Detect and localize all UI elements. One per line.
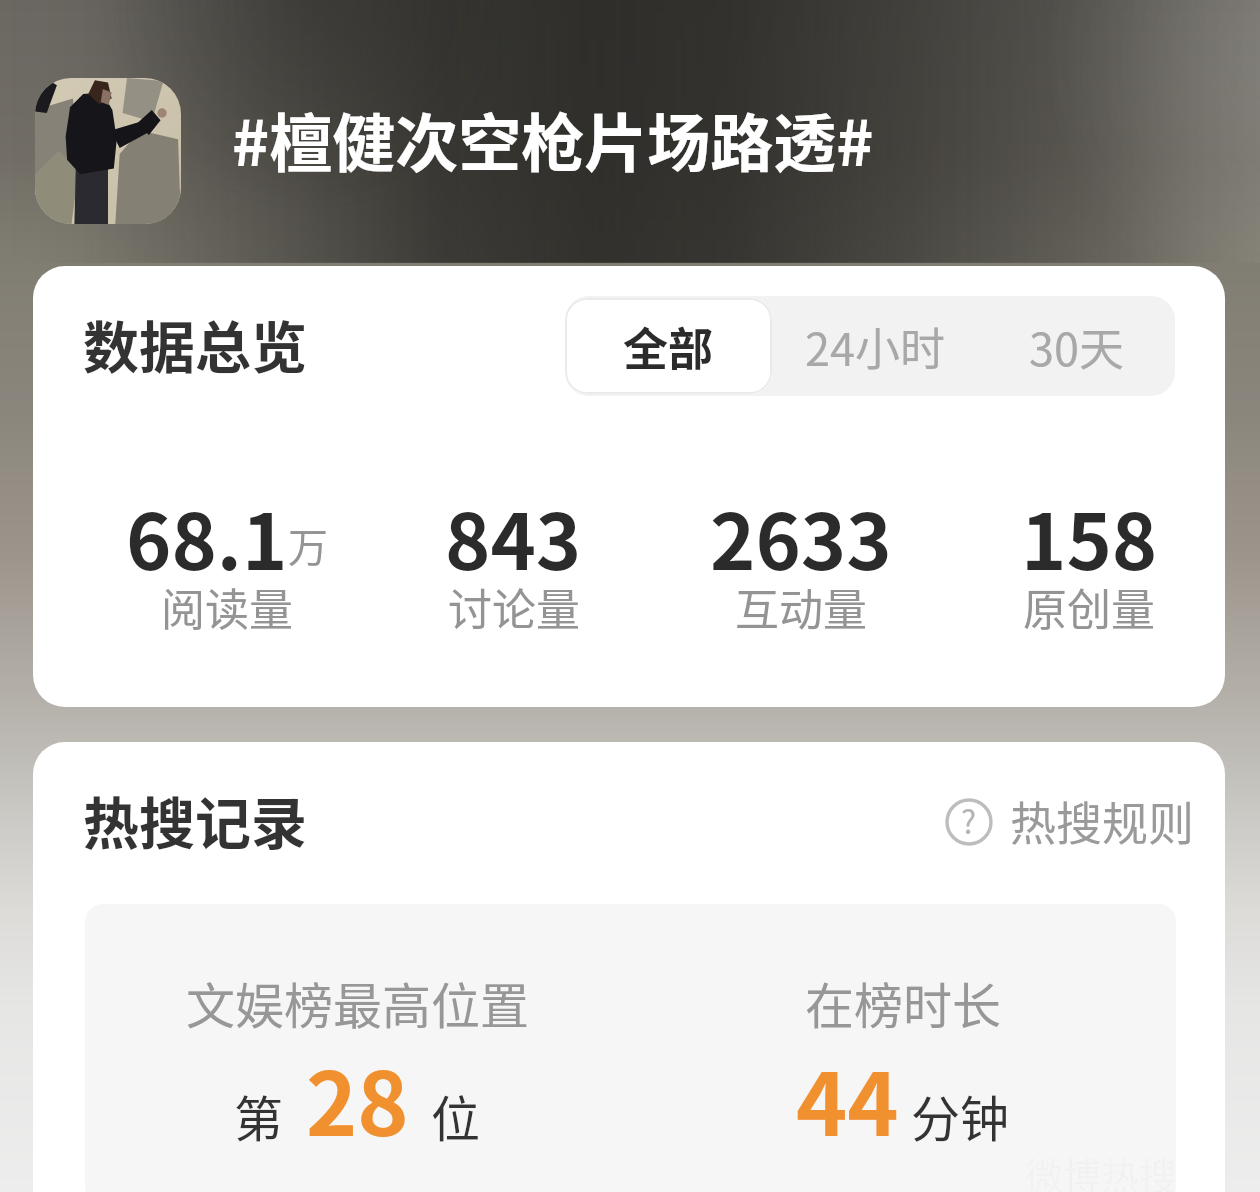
- staticText: 第: [234, 1080, 284, 1151]
- staticText: 位: [431, 1080, 481, 1151]
- staticText: 热搜规则: [1010, 787, 1194, 854]
- staticText: 全部: [623, 314, 714, 379]
- staticText: 文娱榜最高位置: [186, 967, 530, 1038]
- staticText: 原创量: [1023, 575, 1155, 639]
- staticText: 158: [1021, 481, 1158, 592]
- button[interactable]: 30天: [977, 296, 1175, 396]
- button[interactable]: 全部: [565, 298, 772, 394]
- staticText: 热搜记录: [83, 779, 307, 860]
- staticText: ?: [961, 797, 977, 843]
- staticText: 互动量: [735, 575, 867, 639]
- staticText: 2633: [710, 481, 892, 592]
- staticText: 阅读量: [161, 575, 293, 639]
- staticText: 万: [288, 516, 328, 574]
- button[interactable]: Topic cover photo: [35, 78, 181, 224]
- button[interactable]: ?: [945, 788, 1194, 855]
- staticText: #檀健次空枪片场路透#: [232, 93, 874, 184]
- staticText: 讨论量: [448, 575, 580, 639]
- button[interactable]: 24小时: [772, 296, 977, 396]
- staticText: 数据总览: [83, 303, 307, 384]
- staticText: 分钟: [911, 1080, 1010, 1151]
- staticText: 24小时: [805, 314, 945, 379]
- staticText: 843: [445, 481, 582, 592]
- staticText: 44: [796, 1035, 899, 1161]
- staticText: 28: [306, 1035, 409, 1161]
- staticText: 在榜时长: [805, 967, 1002, 1038]
- staticText: 30天: [1029, 314, 1124, 379]
- staticText: 68.1: [126, 481, 288, 592]
